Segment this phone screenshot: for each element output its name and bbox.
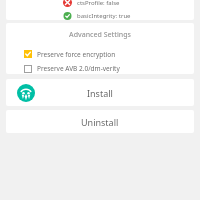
staticText: Preserve force encryption (37, 50, 116, 59)
button[interactable]: ctsProfile: false (6, 0, 194, 8)
button[interactable]: Uninstall (6, 110, 194, 133)
other: Magisk (17, 84, 35, 102)
button[interactable]: Preserve AVB 2.0/dm-verity (6, 63, 194, 74)
staticText: Preserve AVB 2.0/dm-verity (37, 64, 120, 73)
staticText: ctsProfile: false (77, 0, 120, 7)
button[interactable]: Preserve force encryption (6, 48, 194, 60)
staticText: Advanced Settings (6, 30, 194, 40)
staticText: Install (87, 87, 113, 99)
staticText: basicIntegrity: true (77, 12, 131, 20)
button[interactable]: Magisk (6, 79, 194, 106)
button[interactable]: basicIntegrity: true (6, 12, 194, 20)
staticText: Uninstall (81, 116, 119, 128)
